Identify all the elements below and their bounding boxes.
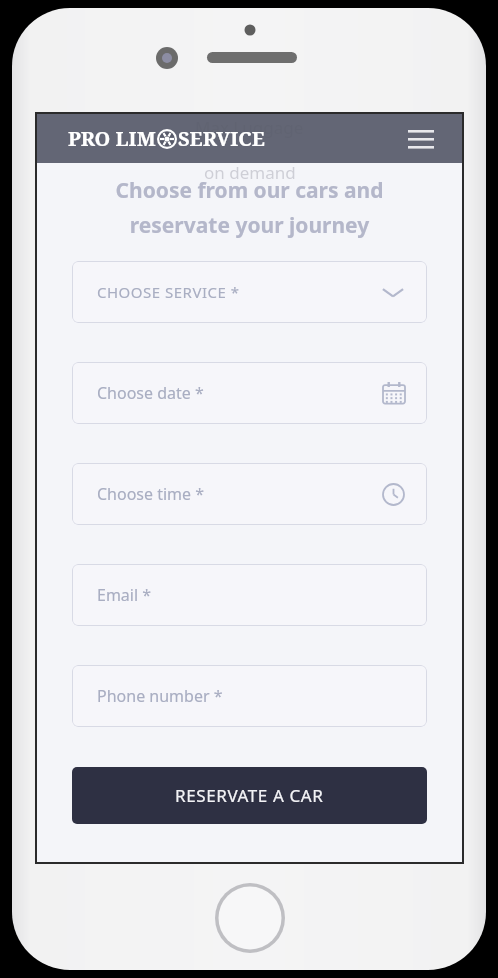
staticText: Choose time * bbox=[97, 483, 205, 505]
staticText: Max Luggage bbox=[195, 116, 304, 139]
staticText: CHOOSE SERVICE * bbox=[97, 282, 240, 302]
other: Expand bbox=[381, 280, 405, 304]
staticText: PRO LIM bbox=[68, 125, 156, 152]
button[interactable]: RESERVATE A CAR bbox=[72, 767, 427, 824]
button[interactable]: Choose date * bbox=[72, 362, 427, 424]
staticText: on demand bbox=[204, 161, 296, 184]
staticText: Choose date * bbox=[97, 382, 204, 404]
staticText: Email * bbox=[97, 584, 152, 606]
button[interactable]: CHOOSE SERVICE * bbox=[72, 261, 427, 323]
button[interactable]: Open menu bbox=[404, 122, 438, 156]
button[interactable]: Choose time * bbox=[72, 463, 427, 525]
button[interactable]: Email * bbox=[72, 564, 427, 626]
button[interactable]: Phone number * bbox=[72, 665, 427, 727]
other: Pick date bbox=[383, 382, 405, 404]
staticText: Choose from our cars and reservate your … bbox=[115, 176, 384, 239]
staticText: RESERVATE A CAR bbox=[175, 784, 324, 807]
staticText: Phone number * bbox=[97, 685, 223, 707]
button[interactable]: PRO LIM bbox=[68, 125, 265, 152]
staticText: SERVICE bbox=[178, 125, 265, 152]
other: Pick time bbox=[382, 483, 405, 506]
